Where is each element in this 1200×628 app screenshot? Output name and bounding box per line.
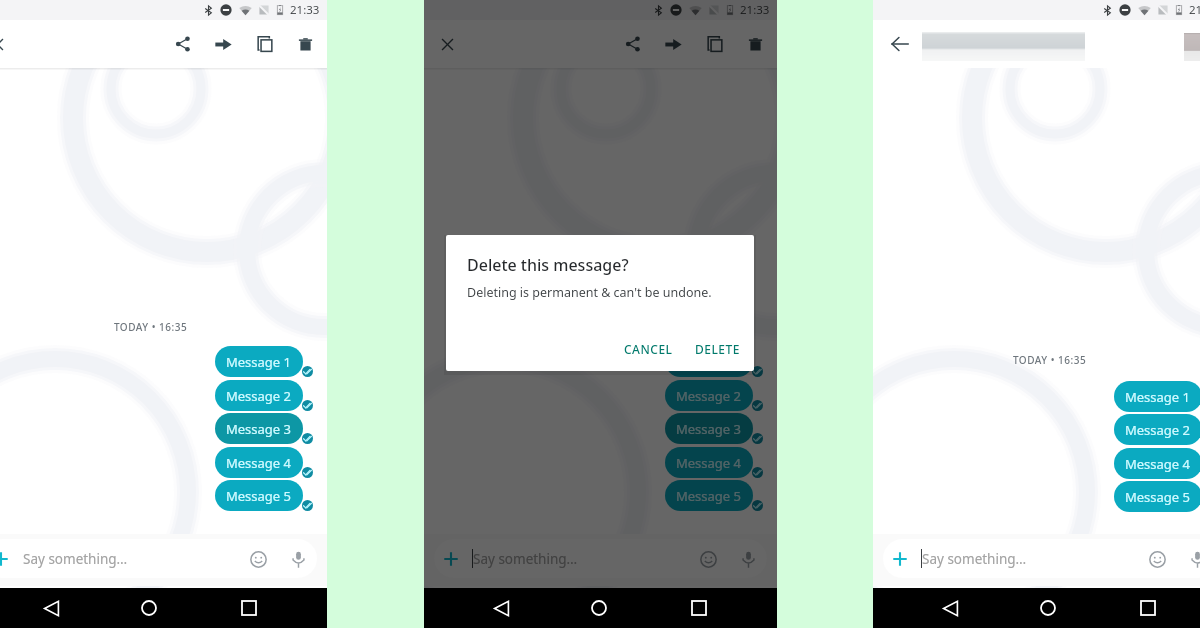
button[interactable]: Message 3 [215, 413, 303, 444]
button[interactable]: DELETE [686, 334, 749, 364]
button[interactable]: Message 4 [665, 447, 753, 478]
button[interactable]: Home [1025, 588, 1071, 628]
staticText: Delete this message? [467, 254, 629, 276]
button[interactable]: Forward [203, 22, 244, 66]
staticText: DELETE [695, 341, 740, 357]
button[interactable]: Emoji [694, 545, 722, 573]
staticText: TODAY • 16:35 [0, 320, 327, 334]
staticText: 21:33 [740, 2, 770, 18]
staticText: Message 5 [226, 487, 292, 505]
staticText: Message 2 [1125, 421, 1191, 439]
button[interactable]: Back [28, 588, 74, 628]
button[interactable]: Delete [285, 22, 326, 66]
button[interactable]: Recent apps [226, 588, 272, 628]
button[interactable]: Message 5 [215, 480, 303, 511]
button[interactable]: Recent apps [1125, 588, 1171, 628]
staticText: Deleting is permanent & can't be undone. [467, 284, 712, 301]
button[interactable]: Message 4 [1114, 448, 1200, 479]
staticText: Message 1 [226, 353, 292, 371]
button[interactable]: Add attachment [887, 546, 913, 572]
button[interactable]: Recent apps [676, 588, 722, 628]
button[interactable]: Back [927, 588, 973, 628]
staticText: 21:33 [1189, 2, 1200, 18]
button[interactable]: CANCEL [615, 334, 682, 364]
staticText: Message 2 [676, 387, 742, 405]
staticText: Say something… [922, 550, 1027, 568]
button[interactable]: Emoji [244, 545, 272, 573]
button[interactable]: Message 5 [665, 480, 753, 511]
button[interactable]: Message 4 [215, 447, 303, 478]
staticText: Say something… [473, 550, 578, 568]
staticText: TODAY • 16:35 [424, 320, 777, 334]
staticText: Message 4 [226, 454, 292, 472]
staticText: Message 3 [226, 420, 292, 438]
button[interactable]: Message 1 [1114, 381, 1200, 412]
button[interactable]: Emoji [1143, 545, 1171, 573]
button[interactable]: Home [576, 588, 622, 628]
button[interactable]: Message 1 [665, 346, 753, 377]
staticText: CANCEL [624, 341, 673, 357]
button[interactable]: Add attachment [438, 546, 464, 572]
button[interactable]: Close [430, 27, 464, 61]
staticText: Message 4 [676, 454, 742, 472]
staticText: Message 5 [1125, 488, 1191, 506]
button[interactable]: Back [883, 27, 917, 61]
button[interactable]: Message 2 [665, 380, 753, 411]
button[interactable]: Close [0, 27, 14, 61]
button[interactable]: Delete [735, 22, 776, 66]
button[interactable]: Message 3 [665, 413, 753, 444]
button[interactable]: Back [478, 588, 524, 628]
button[interactable]: Voice input [284, 545, 312, 573]
button[interactable]: Message 1 [215, 346, 303, 377]
button[interactable]: Message 5 [1114, 481, 1200, 512]
staticText: Message 4 [1125, 455, 1191, 473]
button[interactable]: Copy [694, 22, 735, 66]
staticText: Message 1 [676, 353, 742, 371]
button[interactable]: Home [126, 588, 172, 628]
button[interactable]: Forward [653, 22, 694, 66]
staticText: TODAY • 16:35 [873, 353, 1200, 367]
staticText: Message 3 [676, 420, 742, 438]
staticText: Message 2 [226, 387, 292, 405]
staticText: Message 1 [1125, 388, 1191, 406]
button[interactable]: Voice input [1183, 545, 1200, 573]
button[interactable]: Voice input [734, 545, 762, 573]
button[interactable]: Copy [244, 22, 285, 66]
button[interactable]: Share [612, 22, 653, 66]
staticText: Message 5 [676, 487, 742, 505]
staticText: Say something… [23, 550, 128, 568]
button[interactable]: Message 2 [1114, 414, 1200, 445]
staticText: 21:33 [290, 2, 320, 18]
button[interactable]: Share [162, 22, 203, 66]
button[interactable]: Add attachment [0, 546, 14, 572]
button[interactable]: Message 2 [215, 380, 303, 411]
